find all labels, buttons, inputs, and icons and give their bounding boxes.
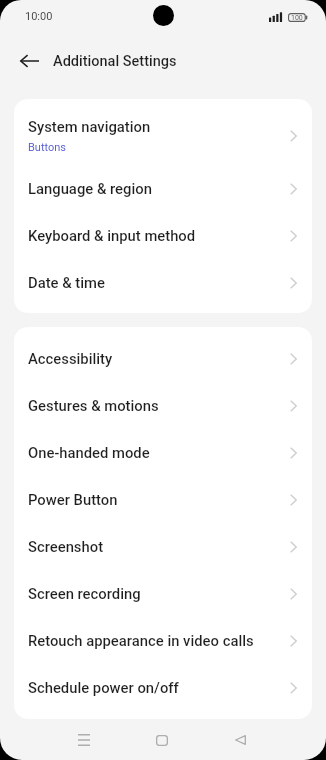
button[interactable]: Language & region xyxy=(14,165,312,212)
button[interactable]: Screen recording xyxy=(14,570,312,617)
staticText: Accessibility xyxy=(28,350,113,367)
button[interactable]: Back xyxy=(220,720,260,760)
button[interactable]: Accessibility xyxy=(14,335,312,382)
staticText: Screenshot xyxy=(28,538,104,555)
staticText: One-handed mode xyxy=(28,444,150,461)
button[interactable]: System navigation xyxy=(14,106,312,165)
button[interactable]: Retouch appearance in video calls xyxy=(14,617,312,664)
button[interactable]: Power Button xyxy=(14,476,312,523)
staticText: Screen recording xyxy=(28,585,141,602)
button[interactable]: Date & time xyxy=(14,259,312,306)
staticText: Gestures & motions xyxy=(28,397,159,414)
staticText: System navigation xyxy=(28,118,151,135)
staticText: Buttons xyxy=(28,141,67,154)
button[interactable]: Screenshot xyxy=(14,523,312,570)
staticText: Retouch appearance in video calls xyxy=(28,632,254,649)
staticText: Power Button xyxy=(28,491,118,508)
staticText: Language & region xyxy=(28,180,152,197)
staticText: Additional Settings xyxy=(53,53,177,70)
staticText: Keyboard & input method xyxy=(28,227,196,244)
staticText: 10:00 xyxy=(25,10,53,23)
button[interactable]: Gestures & motions xyxy=(14,382,312,429)
button[interactable]: Schedule power on/off xyxy=(14,664,312,711)
button[interactable]: Home xyxy=(142,720,182,760)
button[interactable]: Keyboard & input method xyxy=(14,212,312,259)
button[interactable]: Back xyxy=(12,44,46,78)
button[interactable]: One-handed mode xyxy=(14,429,312,476)
staticText: Schedule power on/off xyxy=(28,679,179,696)
staticText: 100 xyxy=(291,14,303,22)
staticText: Date & time xyxy=(28,274,105,291)
button[interactable]: Recents xyxy=(64,720,104,760)
